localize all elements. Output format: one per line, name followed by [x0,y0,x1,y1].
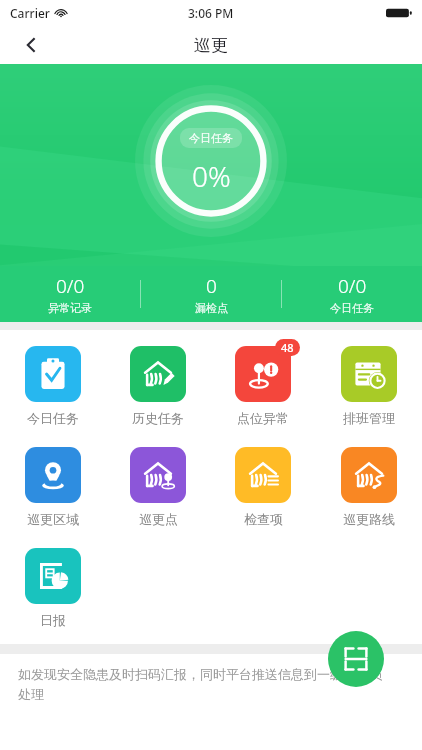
staticText: 巡更路线 [343,511,395,527]
button[interactable]: 48 [235,344,291,428]
staticText: 点位异常 [237,410,289,426]
button[interactable]: 巡更区域 [25,445,81,529]
button[interactable]: 检查项 [235,445,291,529]
staticText: 0/0 [338,273,367,299]
button[interactable]: Back [14,28,48,62]
staticText: 0/0 [56,273,85,299]
staticText: 检查项 [244,511,283,527]
button[interactable]: 0/0 [0,273,140,315]
button[interactable]: 0 [141,273,281,315]
staticText: 巡更区域 [27,511,79,527]
button[interactable]: 巡更点 [130,445,186,529]
button[interactable]: Scan QR code [328,631,384,687]
staticText: 3:06 PM [188,5,234,21]
staticText: 如发现安全隐患及时扫码汇报，同时平台推送信息到一级网格员处理 [18,666,382,703]
staticText: 0% [192,157,231,195]
staticText: Carrier [10,5,50,21]
staticText: 今日任务 [189,131,233,145]
staticText: 0 [206,273,217,299]
button[interactable]: 0/0 [282,273,422,315]
staticText: 日报 [40,612,66,628]
button[interactable]: 日报 [25,546,81,630]
button[interactable]: 排班管理 [341,344,397,428]
staticText: 排班管理 [343,410,395,426]
button[interactable]: 历史任务 [130,344,186,428]
button[interactable]: 今日任务 [25,344,81,428]
button[interactable]: 巡更路线 [341,445,397,529]
staticText: 漏检点 [195,301,228,315]
staticText: 巡更 [194,35,228,56]
staticText: 今日任务 [27,410,79,426]
staticText: 历史任务 [132,410,184,426]
staticText: 异常记录 [48,301,92,315]
staticText: 48 [281,340,294,355]
staticText: 巡更点 [139,511,178,527]
staticText: 今日任务 [330,301,374,315]
